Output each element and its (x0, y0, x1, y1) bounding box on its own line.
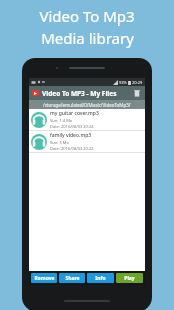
button[interactable]: family video.mp3 (29, 131, 145, 152)
staticText: family video.mp3 (50, 132, 92, 139)
staticText: 93% (119, 80, 127, 85)
button[interactable]: my guitar cover.mp3 (29, 109, 145, 130)
staticText: Video To MP3 - My Files (42, 89, 117, 98)
staticText: /storage/emulated/0/Music/VideoToMp3/ (43, 102, 131, 108)
staticText: my guitar cover.mp3 (50, 110, 99, 117)
button[interactable]: Info (87, 273, 114, 283)
staticText: 20:29 (132, 80, 143, 85)
staticText: Video To Mp3 (39, 6, 135, 26)
staticText: Date: 2016/08/03 20:24 (50, 124, 94, 129)
button[interactable]: Delete (132, 88, 142, 98)
staticText: Media library (41, 28, 134, 48)
staticText: Share (65, 275, 80, 282)
button[interactable]: Play (116, 273, 143, 283)
staticText: Remove (34, 275, 55, 282)
staticText: Play (124, 275, 135, 282)
staticText: Info (95, 275, 106, 282)
staticText: Size: 1.4 Mo (50, 118, 73, 123)
button[interactable]: Share (59, 273, 85, 283)
staticText: Size: 5 Mo (50, 140, 69, 145)
button[interactable]: Remove (31, 273, 57, 283)
staticText: Date: 2016/08/03 20:22 (50, 146, 94, 151)
